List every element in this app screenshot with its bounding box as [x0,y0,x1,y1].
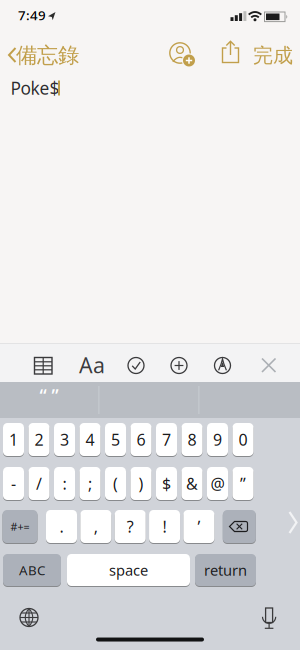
staticText: 4 [85,429,94,450]
staticText: 0 [238,429,247,450]
staticText: $ [162,473,171,494]
staticText: : [62,473,66,494]
staticText: 8 [187,429,196,450]
staticText: ” [240,473,246,494]
staticText: Poke$ [10,76,59,99]
staticText: ABC [19,561,45,579]
staticText: ? [127,516,134,537]
staticText: “ ” [39,384,58,407]
staticText: 3 [60,429,69,450]
staticText: 備忘錄 [16,42,79,69]
staticText: & [186,473,198,494]
staticText: ) [138,473,143,494]
staticText: ! [163,516,167,537]
staticText: 5 [111,429,120,450]
staticText: space [109,560,148,580]
staticText: 7:49 [18,6,46,24]
staticText: #+= [10,519,29,534]
staticText: 1 [9,429,18,450]
staticText: ’ [197,516,200,537]
staticText: @ [210,473,224,494]
staticText: ; [88,473,92,494]
staticText: - [11,473,16,494]
staticText: 2 [34,429,43,450]
staticText: 完成 [253,43,293,68]
staticText: ( [113,473,118,494]
staticText: , [94,516,98,537]
staticText: return [204,560,247,580]
staticText: Aa [79,351,105,379]
staticText: 6 [136,429,145,450]
staticText: . [59,516,63,537]
staticText: / [36,473,42,494]
staticText: 9 [213,429,222,450]
staticText: 7 [162,429,171,450]
